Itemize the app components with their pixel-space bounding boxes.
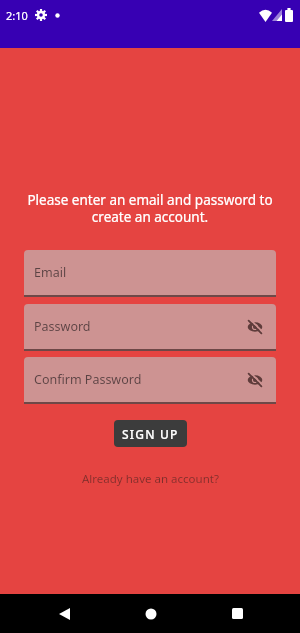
button[interactable] (40, 594, 88, 633)
staticText: 2:10 (6, 8, 28, 23)
staticText: Password (34, 318, 91, 335)
staticText: Already have an account? (82, 471, 219, 487)
button[interactable] (246, 371, 264, 389)
staticText: SIGN UP (122, 426, 179, 442)
button[interactable]: Email (24, 250, 276, 295)
button[interactable] (213, 594, 261, 633)
button[interactable]: Already have an account? (0, 469, 300, 488)
button[interactable] (246, 318, 264, 336)
staticText: Confirm Password (34, 371, 142, 388)
staticText: Email (34, 264, 67, 281)
button[interactable]: Password (24, 304, 276, 349)
button[interactable]: Confirm Password (24, 357, 276, 402)
button[interactable] (127, 594, 175, 633)
button[interactable]: SIGN UP (114, 420, 187, 447)
staticText: Please enter an email and password to cr… (27, 191, 273, 226)
